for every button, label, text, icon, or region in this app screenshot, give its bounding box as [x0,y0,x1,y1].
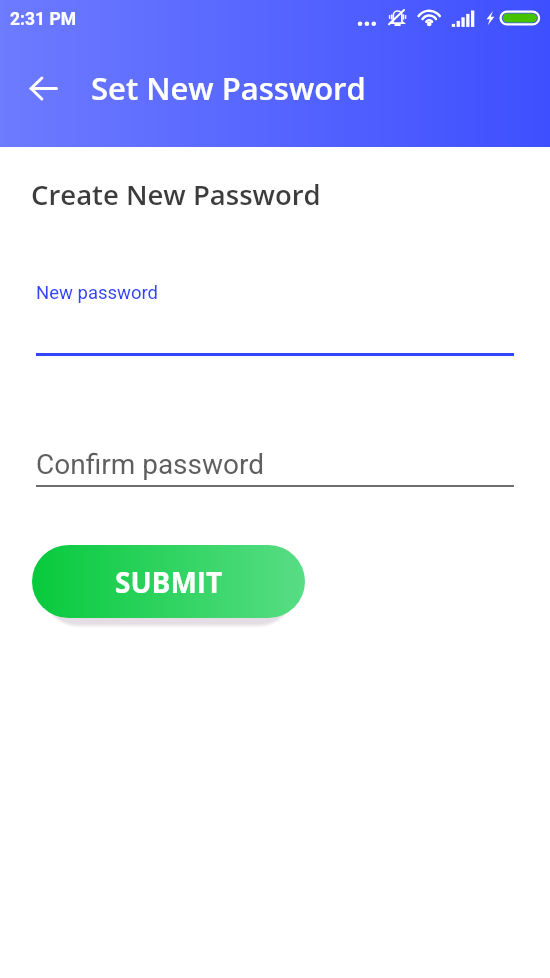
staticText: New password [36,282,159,304]
staticText: Create New Password [31,176,321,213]
button[interactable]: Back [19,64,67,112]
button[interactable]: New password [36,278,514,356]
button[interactable]: Confirm password [36,444,514,487]
staticText: Set New Password [91,67,366,109]
staticText: 2:31 PM [10,9,77,30]
staticText: SUBMIT [115,563,223,601]
staticText: Confirm password [36,448,265,481]
button[interactable]: SUBMIT [32,545,305,618]
